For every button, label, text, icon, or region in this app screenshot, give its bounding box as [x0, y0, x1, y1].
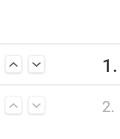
- button[interactable]: Move up: [5, 55, 22, 73]
- button[interactable]: Move down: [28, 55, 45, 73]
- button[interactable]: Move up: [5, 96, 22, 114]
- button[interactable]: Move down: [28, 96, 45, 114]
- staticText: 1.: [102, 55, 118, 77]
- staticText: 2.: [102, 98, 115, 116]
